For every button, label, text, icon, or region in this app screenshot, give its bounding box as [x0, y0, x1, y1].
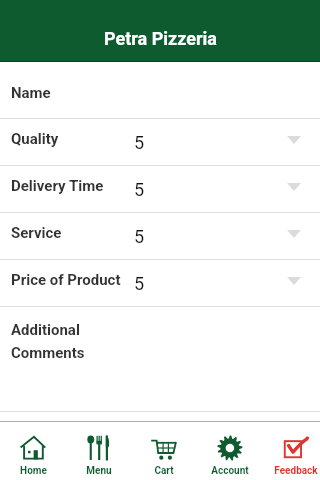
- button[interactable]: Account: [199, 422, 261, 480]
- staticText: Account: [211, 465, 249, 477]
- button[interactable]: Home: [2, 422, 64, 480]
- staticText: Cart: [154, 465, 174, 477]
- button[interactable]: Additional: [0, 307, 320, 411]
- staticText: Delivery Time: [11, 177, 104, 195]
- staticText: Comments: [11, 344, 85, 362]
- staticText: Additional: [11, 321, 80, 339]
- button[interactable]: Price of Product: [0, 260, 320, 306]
- staticText: 5: [134, 132, 145, 153]
- button[interactable]: Menu: [68, 422, 130, 480]
- staticText: Home: [20, 465, 47, 477]
- staticText: 5: [134, 226, 145, 247]
- button[interactable]: Delivery Time: [0, 166, 320, 212]
- button[interactable]: Service: [0, 213, 320, 259]
- staticText: Name: [11, 84, 51, 102]
- staticText: Service: [11, 224, 62, 242]
- staticText: Petra Pizzeria: [104, 28, 217, 49]
- button[interactable]: Feedback: [265, 422, 320, 480]
- staticText: Feedback: [274, 465, 318, 477]
- staticText: 5: [134, 273, 145, 294]
- button[interactable]: Cart: [133, 422, 195, 480]
- staticText: 5: [134, 179, 145, 200]
- button[interactable]: Quality: [0, 119, 320, 165]
- staticText: Price of Product: [11, 271, 121, 289]
- staticText: Menu: [86, 465, 112, 477]
- staticText: Quality: [11, 130, 59, 148]
- button[interactable]: Name: [0, 62, 320, 118]
